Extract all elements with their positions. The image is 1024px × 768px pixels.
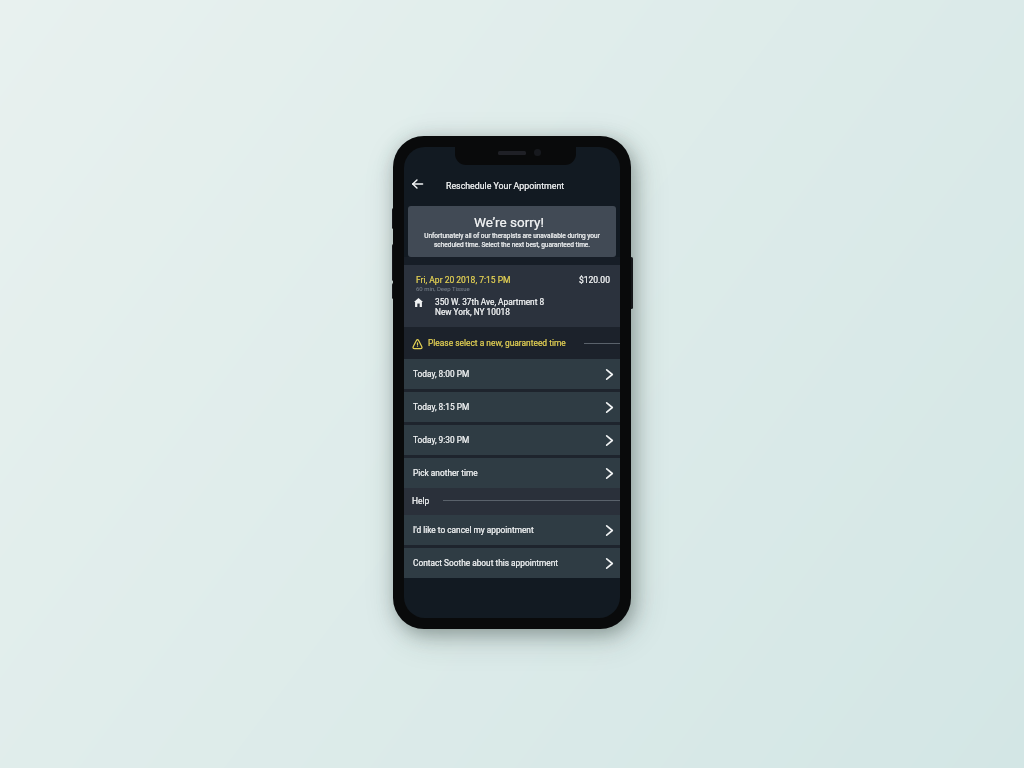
staticText: We’re sorry! bbox=[474, 214, 544, 230]
button[interactable]: Today, 9:30 PM bbox=[404, 425, 620, 455]
staticText: Today, 9:30 PM bbox=[413, 435, 470, 445]
staticText: Reschedule Your Appointment bbox=[446, 181, 565, 191]
staticText: Today, 8:15 PM bbox=[413, 402, 470, 412]
staticText: Help bbox=[412, 496, 430, 506]
button[interactable]: I'd like to cancel my appointment bbox=[404, 515, 620, 545]
staticText: $120.00 bbox=[579, 275, 610, 285]
staticText: 60 min, Deep Tissue bbox=[416, 285, 470, 292]
button[interactable]: Today, 8:00 PM bbox=[404, 359, 620, 389]
button[interactable]: Contact Soothe about this appointment bbox=[404, 548, 620, 578]
button[interactable]: Today, 8:15 PM bbox=[404, 392, 620, 422]
staticText: Please select a new, guaranteed time bbox=[428, 338, 566, 348]
staticText: 350 W. 37th Ave, Apartment 8 bbox=[435, 297, 545, 307]
button[interactable]: Pick another time bbox=[404, 458, 620, 488]
staticText: New York, NY 10018 bbox=[435, 307, 510, 317]
staticText: Fri, Apr 20 2018, 7:15 PM bbox=[416, 275, 511, 285]
staticText: Pick another time bbox=[413, 468, 478, 478]
button[interactable]: Back bbox=[408, 174, 427, 193]
staticText: Unfortunately all of our therapists are … bbox=[417, 232, 607, 248]
staticText: Today, 8:00 PM bbox=[413, 369, 470, 379]
staticText: Contact Soothe about this appointment bbox=[413, 558, 558, 568]
staticText: I'd like to cancel my appointment bbox=[413, 525, 534, 535]
